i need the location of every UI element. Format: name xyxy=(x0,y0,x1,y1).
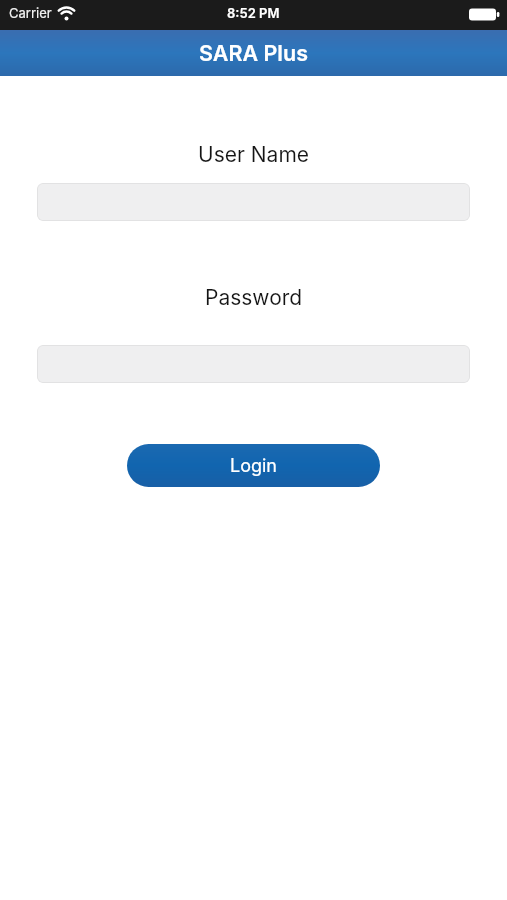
staticText: Login xyxy=(230,455,278,477)
button[interactable]: Login xyxy=(127,444,380,487)
staticText: User Name xyxy=(198,142,310,167)
staticText: SARA Plus xyxy=(199,40,308,66)
staticText: 8:52 PM xyxy=(227,5,280,21)
button[interactable] xyxy=(37,183,470,221)
button[interactable] xyxy=(37,345,470,383)
staticText: Carrier xyxy=(9,5,52,21)
staticText: Password xyxy=(205,285,303,310)
